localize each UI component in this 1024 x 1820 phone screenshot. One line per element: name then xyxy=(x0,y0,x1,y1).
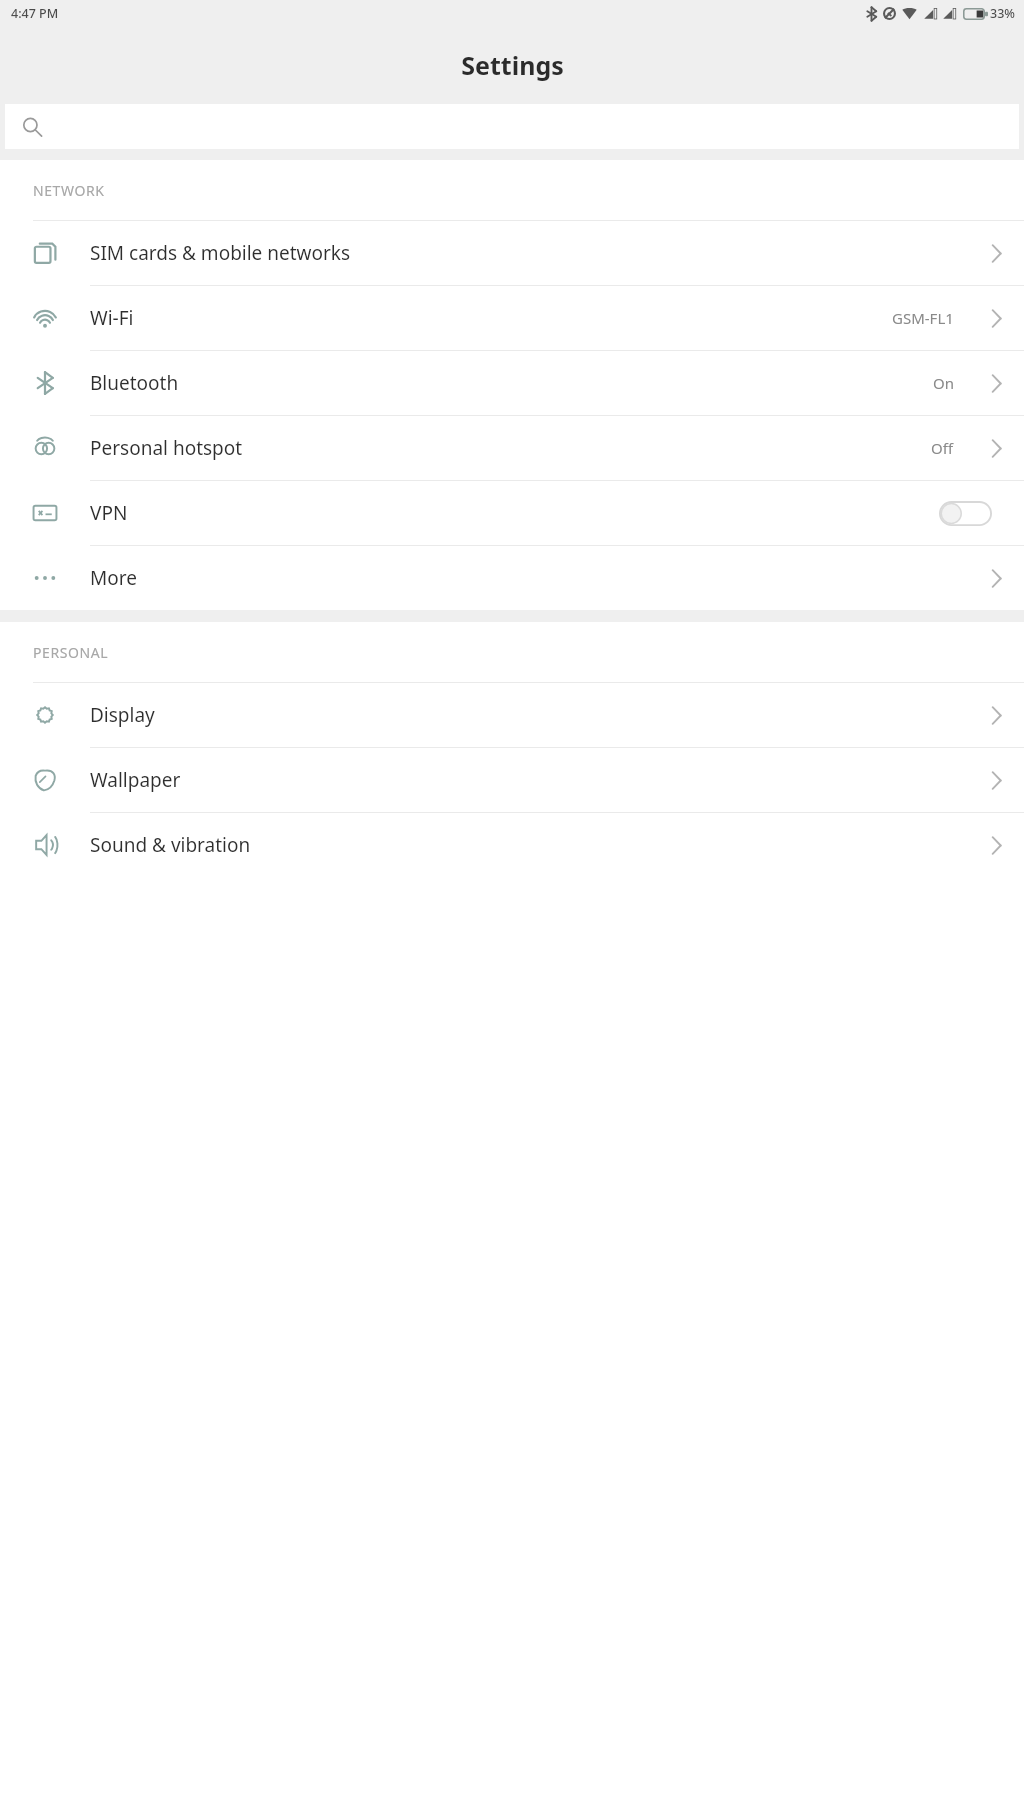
button[interactable]: Wi-Fi xyxy=(0,286,1024,350)
button[interactable]: Wallpaper xyxy=(0,748,1024,812)
staticText: Display xyxy=(90,702,968,728)
staticText: Personal hotspot xyxy=(90,435,931,461)
staticText: On xyxy=(933,373,954,393)
staticText: Off xyxy=(931,438,954,458)
button[interactable]: Display xyxy=(0,683,1024,747)
button[interactable]: Sound & vibration xyxy=(0,813,1024,877)
button[interactable]: More xyxy=(0,546,1024,610)
staticText: Wallpaper xyxy=(90,767,968,793)
staticText: More xyxy=(90,565,968,591)
staticText: SIM cards & mobile networks xyxy=(90,240,968,266)
other: Search xyxy=(22,117,42,137)
button[interactable]: Bluetooth xyxy=(0,351,1024,415)
button[interactable]: Search xyxy=(5,104,1019,149)
staticText: Settings xyxy=(461,48,564,82)
staticText: VPN xyxy=(90,500,939,526)
button[interactable]: VPN xyxy=(0,481,1024,545)
staticText: GSM-FL1 xyxy=(892,308,954,328)
staticText: NETWORK xyxy=(33,181,105,200)
button[interactable]: Personal hotspot xyxy=(0,416,1024,480)
staticText: Sound & vibration xyxy=(90,832,968,858)
staticText: Wi-Fi xyxy=(90,305,892,331)
staticText: PERSONAL xyxy=(33,643,109,662)
button[interactable]: SIM cards & mobile networks xyxy=(0,221,1024,285)
button[interactable]: VPN toggle xyxy=(939,501,992,526)
staticText: Bluetooth xyxy=(90,370,933,396)
staticText: 33% xyxy=(990,5,1015,22)
staticText: 4:47 PM xyxy=(11,5,59,22)
